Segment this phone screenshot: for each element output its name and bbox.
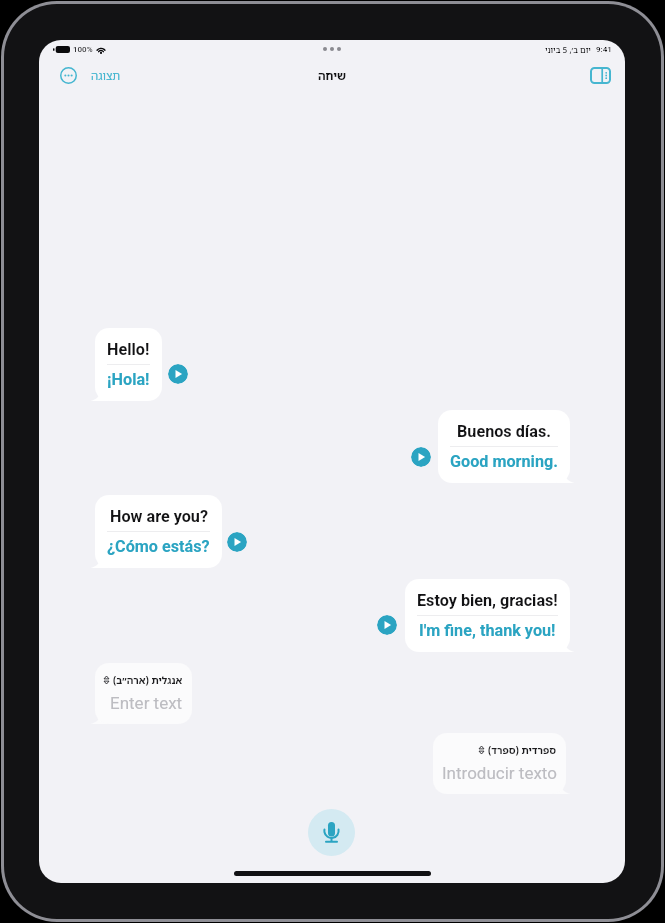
button[interactable]: Microphone (308, 809, 355, 856)
staticText: שיחה (318, 68, 347, 84)
staticText: ספרדית (ספרד) (488, 743, 557, 757)
button[interactable]: More options (56, 64, 125, 87)
staticText: 9:41 (596, 45, 612, 54)
staticText: ¿Cómo estás? (107, 537, 210, 556)
button[interactable]: Play translation (377, 615, 397, 635)
staticText: אנגלית (ארה״ב) (113, 673, 183, 687)
button[interactable]: Play translation (168, 364, 188, 384)
button[interactable]: Sidebar (588, 63, 612, 87)
staticText: I'm fine, thank you! (419, 621, 556, 640)
staticText: Estoy bien, gracias! (417, 591, 558, 610)
button[interactable]: ספרדית (ספרד) (433, 733, 566, 794)
staticText: Buenos días. (457, 422, 551, 441)
staticText: Enter text (110, 693, 183, 713)
staticText: Good morning. (450, 452, 558, 471)
button[interactable]: Estoy bien, gracias! (405, 579, 570, 652)
button[interactable]: אנגלית (ארה״ב) (95, 663, 192, 724)
staticText: 100% (73, 45, 93, 54)
staticText: תצוגה (91, 68, 121, 84)
staticText: Introducir texto (442, 763, 557, 783)
staticText: Hello! (107, 340, 150, 359)
button[interactable]: Hello! (95, 328, 162, 401)
other: More options (60, 67, 77, 84)
staticText: ¡Hola! (107, 370, 150, 389)
button[interactable]: Buenos días. (438, 410, 570, 483)
button[interactable]: How are you? (95, 495, 222, 568)
button[interactable]: Play translation (227, 532, 247, 552)
staticText: יום ב׳, 5 ביוני (545, 44, 591, 55)
button[interactable]: Play translation (411, 447, 431, 467)
staticText: How are you? (110, 507, 208, 526)
